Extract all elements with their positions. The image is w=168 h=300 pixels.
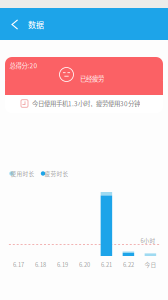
button[interactable]: 返回: [4, 12, 26, 36]
staticText: 6.19: [57, 260, 68, 269]
staticText: 疲劳时长: [44, 169, 68, 177]
staticText: 数据: [28, 19, 44, 30]
staticText: 使用时长: [10, 169, 34, 177]
staticText: 6.20: [79, 260, 90, 269]
staticText: 6.22: [123, 260, 134, 269]
staticText: 今日: [144, 260, 156, 269]
staticText: 6小时: [140, 236, 155, 244]
staticText: 今日使用手机1.3小时，疲劳使用30分钟: [32, 99, 140, 108]
staticText: 6.18: [35, 260, 46, 269]
staticText: 6.17: [13, 260, 24, 269]
staticText: 6.21: [101, 260, 112, 269]
staticText: 总得分:20: [9, 61, 37, 70]
staticText: 已经疲劳: [80, 74, 104, 83]
